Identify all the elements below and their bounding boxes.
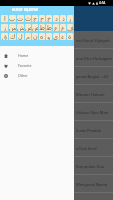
button[interactable]: nal Huruf Hijaiyah Lengkap bbox=[0, 31, 113, 49]
button[interactable]: ش bbox=[17, 24, 24, 31]
button[interactable]: ض bbox=[32, 24, 38, 31]
button[interactable]: Hukum Nun Mati bbox=[0, 103, 113, 121]
other: Favorite bbox=[4, 64, 8, 68]
button[interactable]: ق bbox=[1, 33, 8, 40]
staticText: ظ bbox=[46, 24, 52, 31]
button[interactable]: ي bbox=[53, 33, 59, 40]
button[interactable]: Surat Pendek Pilihan bbox=[0, 121, 113, 139]
button[interactable]: ت bbox=[17, 15, 24, 22]
button[interactable]: ث bbox=[25, 15, 31, 22]
button[interactable]: ana Dho Ha bagian kedua bbox=[0, 49, 113, 67]
button[interactable]: ص bbox=[25, 24, 31, 31]
staticText: a Doa Kecil bersama bbox=[76, 146, 113, 151]
staticText: ء bbox=[61, 33, 65, 40]
staticText: 4:54 bbox=[99, 1, 106, 5]
button[interactable]: ظ bbox=[46, 24, 52, 31]
staticText: ه bbox=[40, 33, 44, 40]
button[interactable]: س bbox=[9, 24, 16, 31]
staticText: ض bbox=[32, 24, 38, 31]
button[interactable]: ء bbox=[60, 33, 66, 40]
button[interactable]: ط bbox=[39, 24, 45, 31]
staticText: ا bbox=[4, 15, 6, 22]
staticText: ذ bbox=[62, 15, 65, 22]
button[interactable]: ر bbox=[67, 15, 73, 22]
button[interactable]: ح bbox=[39, 15, 45, 22]
button[interactable]: ة bbox=[67, 33, 73, 40]
button[interactable]: ج bbox=[32, 15, 38, 22]
staticText: Other bbox=[18, 73, 28, 78]
button[interactable]: genal Angka +62 bbox=[0, 67, 113, 85]
staticText: س bbox=[9, 24, 16, 31]
button[interactable]: ن bbox=[32, 33, 38, 40]
button[interactable]: م bbox=[25, 33, 31, 40]
button[interactable]: Kumpulan Doa Harian bbox=[0, 157, 113, 175]
staticText: ر bbox=[68, 15, 72, 22]
staticText: ل bbox=[18, 33, 23, 40]
staticText: Kumpulan Doa Harian bbox=[76, 164, 113, 169]
other: Home bbox=[4, 54, 8, 58]
staticText: و bbox=[47, 33, 51, 40]
staticText: ش bbox=[17, 24, 24, 31]
staticText: ط bbox=[39, 24, 45, 31]
button[interactable]: د bbox=[53, 15, 59, 22]
staticText: nal Huruf Hijaiyah Lengkap bbox=[76, 38, 113, 43]
staticText: genal Angka +62 bbox=[76, 74, 109, 79]
staticText: ع bbox=[54, 24, 58, 31]
button[interactable]: ا bbox=[1, 15, 8, 22]
staticText: خ bbox=[47, 15, 52, 22]
staticText: ana Dho Ha bagian kedua bbox=[76, 56, 113, 61]
staticText: د bbox=[55, 15, 58, 22]
staticText: غ bbox=[61, 24, 65, 31]
staticText: ق bbox=[2, 33, 8, 40]
staticText: Hukum Nun Mati bbox=[76, 110, 109, 115]
button[interactable]: a Doa Kecil bersama bbox=[0, 139, 113, 157]
button[interactable]: Favorite bbox=[0, 60, 74, 70]
button[interactable]: ل bbox=[17, 33, 24, 40]
staticText: ص bbox=[25, 24, 31, 31]
staticText: ي bbox=[53, 33, 59, 40]
button[interactable]: Other bbox=[0, 70, 74, 80]
button[interactable]: Home bbox=[0, 50, 74, 60]
staticText: ف bbox=[67, 24, 73, 31]
staticText: ك bbox=[10, 33, 16, 40]
button[interactable]: Mengenal Nama Malaikat bbox=[0, 175, 113, 193]
staticText: ت bbox=[17, 15, 24, 22]
button[interactable]: ذ bbox=[60, 15, 66, 22]
staticText: ن bbox=[33, 33, 38, 40]
button[interactable]: غ bbox=[60, 24, 66, 31]
staticText: ث bbox=[25, 15, 31, 22]
staticText: Belajar Mengaji bbox=[30, 15, 67, 22]
staticText: Home bbox=[18, 53, 29, 58]
staticText: Favorite bbox=[18, 63, 32, 68]
staticText: ح bbox=[40, 15, 45, 22]
button[interactable]: ف bbox=[67, 24, 73, 31]
staticText: ب bbox=[9, 15, 16, 22]
button[interactable]: خ bbox=[46, 15, 52, 22]
staticText: ة bbox=[68, 33, 72, 40]
staticText: ز bbox=[3, 24, 7, 31]
button[interactable]: ز bbox=[1, 24, 8, 31]
button[interactable]: ك bbox=[9, 33, 16, 40]
staticText: Macam Hukum part 1 bbox=[76, 92, 113, 97]
button[interactable]: ه bbox=[39, 33, 45, 40]
button[interactable]: ب bbox=[9, 15, 16, 22]
button[interactable]: و bbox=[46, 33, 52, 40]
staticText: م bbox=[26, 33, 31, 40]
staticText: ج bbox=[33, 15, 38, 22]
staticText: Surat Pendek Pilihan bbox=[76, 128, 113, 133]
staticText: Mengenal Nama Malaikat bbox=[76, 182, 113, 187]
other: Other bbox=[4, 74, 8, 78]
button[interactable]: ع bbox=[53, 24, 59, 31]
button[interactable]: Macam Hukum part 1 bbox=[0, 85, 113, 103]
staticText: HURUF HIJAIYAH bbox=[0, 8, 50, 12]
